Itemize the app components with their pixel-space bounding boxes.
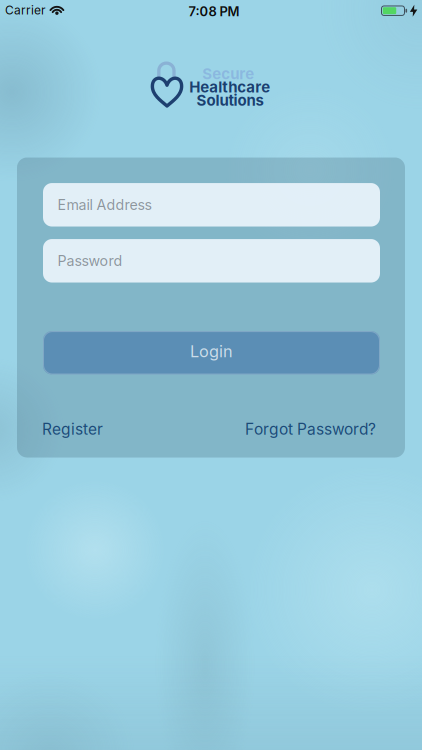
staticText: Password (57, 252, 122, 269)
staticText: Secure (202, 65, 254, 83)
staticText: Register (42, 420, 103, 439)
button[interactable]: Email Address (43, 183, 380, 227)
staticText: Solutions (196, 91, 263, 109)
staticText: 7:08 PM (188, 4, 239, 19)
staticText: Forgot Password? (245, 420, 376, 439)
staticText: Healthcare (189, 78, 270, 96)
staticText: Email Address (57, 196, 151, 213)
button[interactable]: Password (43, 239, 380, 283)
staticText: Carrier (5, 3, 46, 17)
button[interactable]: Forgot Password? (245, 420, 376, 439)
button[interactable]: Login (43, 331, 380, 375)
button[interactable]: Register (42, 420, 103, 439)
staticText: Login (190, 341, 233, 361)
